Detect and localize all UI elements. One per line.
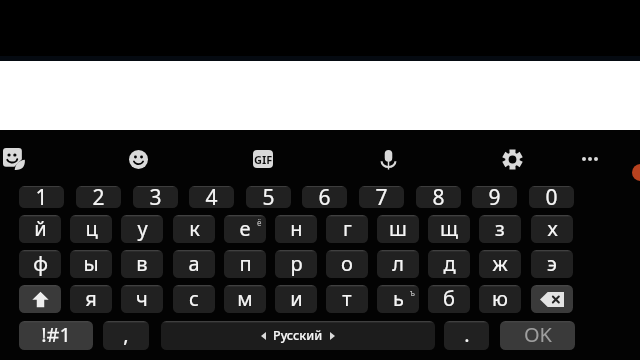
staticText: з (495, 215, 505, 242)
button[interactable] (531, 285, 573, 313)
staticText: ы (83, 250, 99, 277)
staticText: х (547, 215, 558, 242)
button[interactable]: ш (377, 215, 419, 243)
button[interactable]: ф (19, 250, 61, 278)
staticText: ю (492, 285, 508, 312)
staticText: п (239, 250, 252, 277)
button[interactable]: б (428, 285, 470, 313)
staticText: 8 (432, 186, 445, 205)
button[interactable]: ы (70, 250, 112, 278)
button[interactable]: , (103, 321, 149, 350)
button[interactable]: у (121, 215, 163, 243)
staticText: б (443, 285, 455, 312)
button[interactable]: м (224, 285, 266, 313)
staticText: т (342, 285, 352, 312)
staticText: н (290, 215, 303, 242)
staticText: в (136, 250, 148, 277)
button[interactable] (19, 285, 61, 313)
button[interactable]: More options (574, 143, 606, 175)
button[interactable]: ч (121, 285, 163, 313)
staticText: , (123, 321, 129, 348)
staticText: ё (257, 217, 262, 228)
button[interactable]: д (428, 250, 470, 278)
button[interactable]: р (275, 250, 317, 278)
button[interactable]: з (479, 215, 521, 243)
button[interactable]: 8 (416, 186, 461, 208)
staticText: е (239, 215, 251, 242)
staticText: 2 (92, 186, 105, 205)
button[interactable]: ю (479, 285, 521, 313)
button[interactable]: л (377, 250, 419, 278)
button[interactable]: х (531, 215, 573, 243)
button[interactable]: н (275, 215, 317, 243)
button[interactable]: ь (377, 285, 419, 313)
button[interactable]: а (173, 250, 215, 278)
staticText: с (189, 285, 199, 312)
button[interactable]: 3 (133, 186, 178, 208)
staticText: ф (33, 250, 48, 277)
button[interactable]: 1 (19, 186, 64, 208)
staticText: 3 (149, 186, 162, 205)
staticText: 5 (262, 186, 275, 205)
button[interactable]: т (326, 285, 368, 313)
staticText: э (547, 250, 557, 277)
staticText: 4 (205, 186, 218, 205)
staticText: ж (492, 250, 508, 277)
staticText: г (343, 215, 352, 242)
button[interactable]: 6 (302, 186, 347, 208)
staticText: ш (389, 215, 407, 242)
button[interactable]: к (173, 215, 215, 243)
button[interactable]: й (19, 215, 61, 243)
button[interactable]: Voice input (372, 143, 404, 175)
button[interactable]: 5 (246, 186, 291, 208)
staticText: ь (393, 285, 404, 312)
staticText: 7 (375, 186, 388, 205)
staticText: OK (524, 321, 552, 348)
button[interactable]: Русский (161, 321, 435, 350)
staticText: ч (136, 285, 148, 312)
button[interactable]: Emoji (122, 143, 154, 175)
button[interactable]: и (275, 285, 317, 313)
button[interactable]: 9 (472, 186, 517, 208)
button[interactable]: г (326, 215, 368, 243)
button[interactable]: . (444, 321, 489, 350)
button[interactable]: е (224, 215, 266, 243)
staticText: о (341, 250, 353, 277)
staticText: 6 (318, 186, 331, 205)
button[interactable]: ц (70, 215, 112, 243)
button[interactable]: 2 (76, 186, 121, 208)
staticText: и (290, 285, 303, 312)
button[interactable]: !#1 (19, 321, 93, 350)
staticText: . (464, 321, 470, 348)
button[interactable]: я (70, 285, 112, 313)
staticText: а (188, 250, 200, 277)
staticText: я (85, 285, 97, 312)
button[interactable]: Settings (496, 143, 528, 175)
button[interactable]: 7 (359, 186, 404, 208)
staticText: GIF (254, 152, 273, 167)
button[interactable]: Stickers (0, 143, 30, 175)
button[interactable]: о (326, 250, 368, 278)
button[interactable]: 0 (529, 186, 574, 208)
button[interactable]: 4 (189, 186, 234, 208)
staticText: ц (85, 215, 98, 242)
staticText: л (392, 250, 404, 277)
staticText: 0 (545, 186, 558, 205)
staticText: у (137, 215, 148, 242)
staticText: !#1 (41, 321, 71, 348)
staticText: щ (440, 215, 458, 242)
staticText: й (34, 215, 47, 242)
button[interactable]: OK (500, 321, 575, 350)
button[interactable]: э (531, 250, 573, 278)
button[interactable]: п (224, 250, 266, 278)
staticText: д (443, 250, 456, 277)
button[interactable]: ж (479, 250, 521, 278)
staticText: ъ (410, 287, 415, 298)
staticText: 9 (488, 186, 501, 205)
button[interactable]: GIF (247, 143, 279, 175)
button[interactable]: в (121, 250, 163, 278)
button[interactable]: с (173, 285, 215, 313)
staticText: 1 (35, 186, 48, 205)
button[interactable]: щ (428, 215, 470, 243)
staticText: м (237, 285, 253, 312)
